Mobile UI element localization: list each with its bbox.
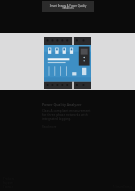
button[interactable]: Read more <box>42 125 57 129</box>
button[interactable]: Power quality analyzer module <box>0 33 135 90</box>
staticText: Class A compliant measurement for three … <box>42 109 93 121</box>
other: Power quality analyzer module <box>44 37 91 89</box>
staticText: Power Quality Analyzer <box>42 102 93 107</box>
staticText: Smart Energy & Power Quality Solutions <box>44 4 92 10</box>
button[interactable]: Smart Energy & Power Quality Solutions <box>42 1 94 12</box>
